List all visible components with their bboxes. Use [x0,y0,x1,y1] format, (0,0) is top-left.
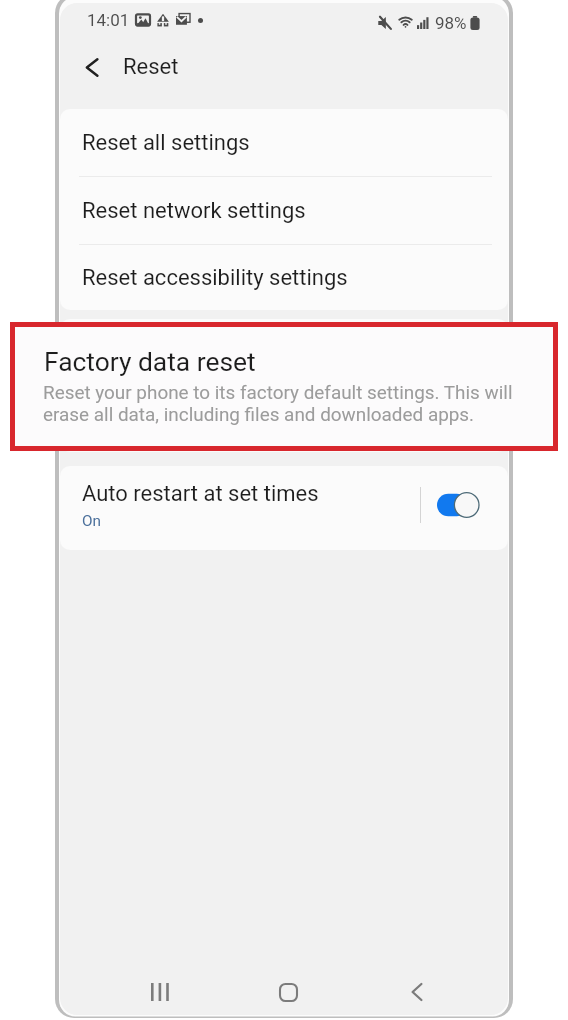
button[interactable]: Back [391,966,443,1015]
button[interactable]: Navigate back [74,49,110,85]
staticText: Auto restart at set times [82,481,319,507]
button[interactable]: Reset all settings [60,109,508,176]
staticText: Reset all settings [82,130,250,156]
button[interactable]: Recent apps [134,966,186,1015]
button[interactable]: Reset accessibility settings [60,245,508,310]
button[interactable]: Factory data reset [10,322,558,451]
button[interactable]: Reset network settings [60,177,508,244]
staticText: 14:01 [87,10,130,30]
staticText: Reset [123,54,179,80]
staticText: Reset accessibility settings [82,265,348,291]
staticText: Reset your phone to its factory default … [84,375,479,413]
staticText: Factory data reset [84,343,261,369]
button[interactable]: Home [262,966,314,1015]
staticText: Reset network settings [82,198,306,224]
staticText: Reset your phone to its factory default … [43,381,513,426]
button[interactable]: Auto restart at set times [60,466,418,550]
staticText: On [82,512,101,530]
button[interactable]: Auto restart at set times toggle [437,485,493,525]
staticText: Factory data reset [44,347,256,378]
staticText: 98% [435,13,467,33]
button[interactable]: Factory data reset [60,319,508,452]
